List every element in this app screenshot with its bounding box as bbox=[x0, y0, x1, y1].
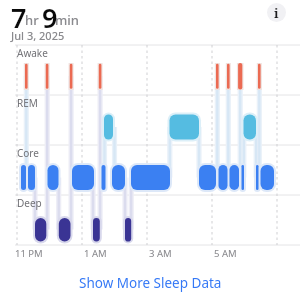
staticText: Deep bbox=[17, 196, 42, 210]
staticText: 7 bbox=[11, 0, 27, 36]
staticText: Awake bbox=[17, 46, 48, 60]
staticText: i bbox=[274, 4, 279, 22]
staticText: Core bbox=[17, 146, 39, 160]
staticText: 1 AM bbox=[84, 247, 107, 260]
staticText: 11 PM bbox=[15, 247, 43, 260]
staticText: REM bbox=[17, 96, 38, 110]
staticText: 3 AM bbox=[149, 247, 172, 260]
staticText: Jul 3, 2025 bbox=[11, 28, 65, 43]
button[interactable]: i bbox=[267, 3, 286, 22]
staticText: min bbox=[55, 11, 79, 29]
staticText: 9 bbox=[42, 0, 58, 36]
staticText: hr bbox=[25, 11, 39, 29]
button[interactable]: Show More Sleep Data bbox=[79, 274, 222, 292]
staticText: 5 AM bbox=[214, 247, 237, 260]
